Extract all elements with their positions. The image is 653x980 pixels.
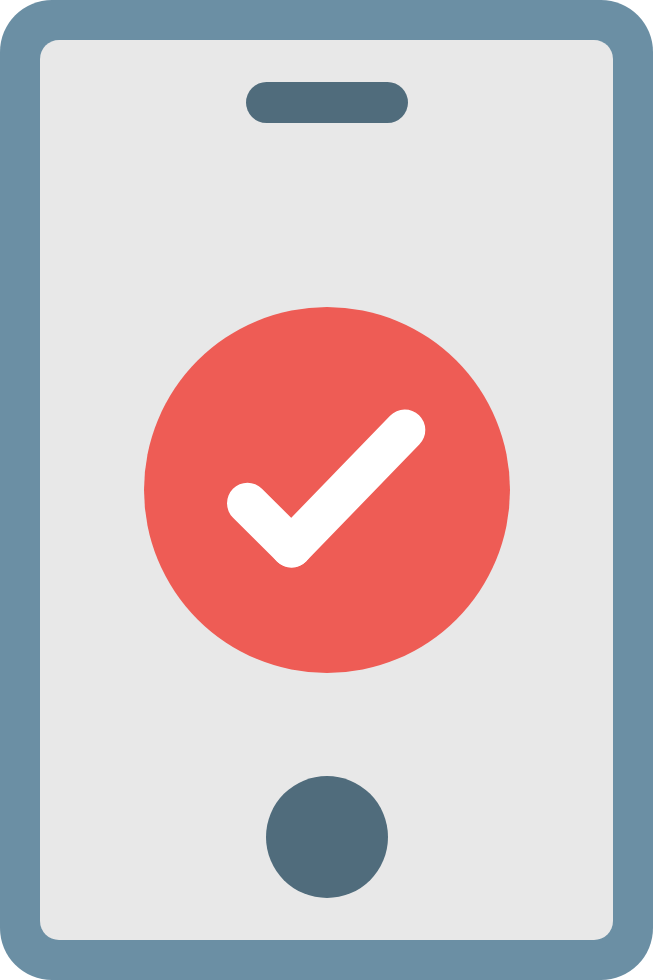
button[interactable]: Home xyxy=(266,776,388,898)
button[interactable]: Smartphone showing a payment confirmatio… xyxy=(0,0,653,980)
button[interactable]: Success xyxy=(144,307,510,673)
